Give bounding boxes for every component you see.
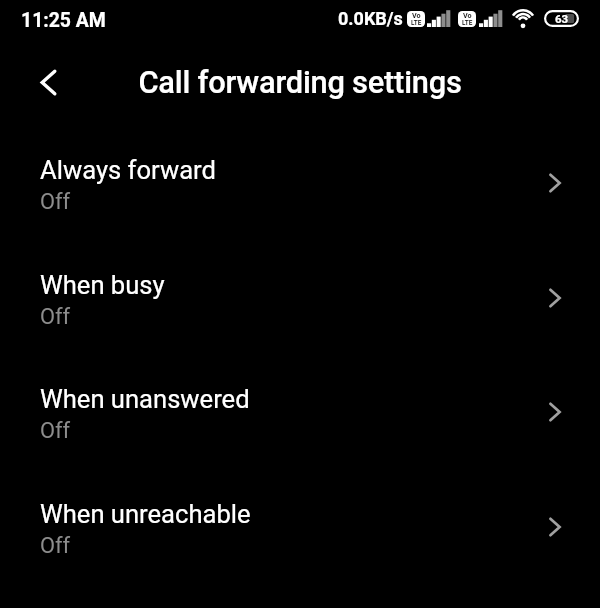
staticText: LTE (462, 19, 473, 27)
button[interactable]: When unanswered (0, 347, 600, 462)
staticText: Off (40, 418, 71, 444)
staticText: Call forwarding settings (138, 64, 462, 100)
staticText: When unanswered (40, 384, 250, 414)
staticText: 63 (555, 12, 569, 25)
staticText: LTE (411, 19, 422, 27)
button[interactable]: Always forward (0, 118, 600, 233)
staticText: When busy (40, 270, 165, 300)
button[interactable]: When busy (0, 233, 600, 348)
staticText: 0.0KB/s (338, 8, 403, 29)
staticText: Off (40, 304, 71, 330)
staticText: Off (40, 533, 71, 559)
staticText: Always forward (40, 155, 216, 185)
button[interactable]: When unreachable (0, 462, 600, 577)
staticText: Vo (412, 11, 421, 19)
staticText: When unreachable (40, 499, 251, 529)
staticText: Vo (463, 11, 472, 19)
staticText: 11:25 AM (21, 9, 106, 32)
button[interactable]: Navigate back (26, 60, 71, 105)
staticText: Off (40, 189, 71, 215)
